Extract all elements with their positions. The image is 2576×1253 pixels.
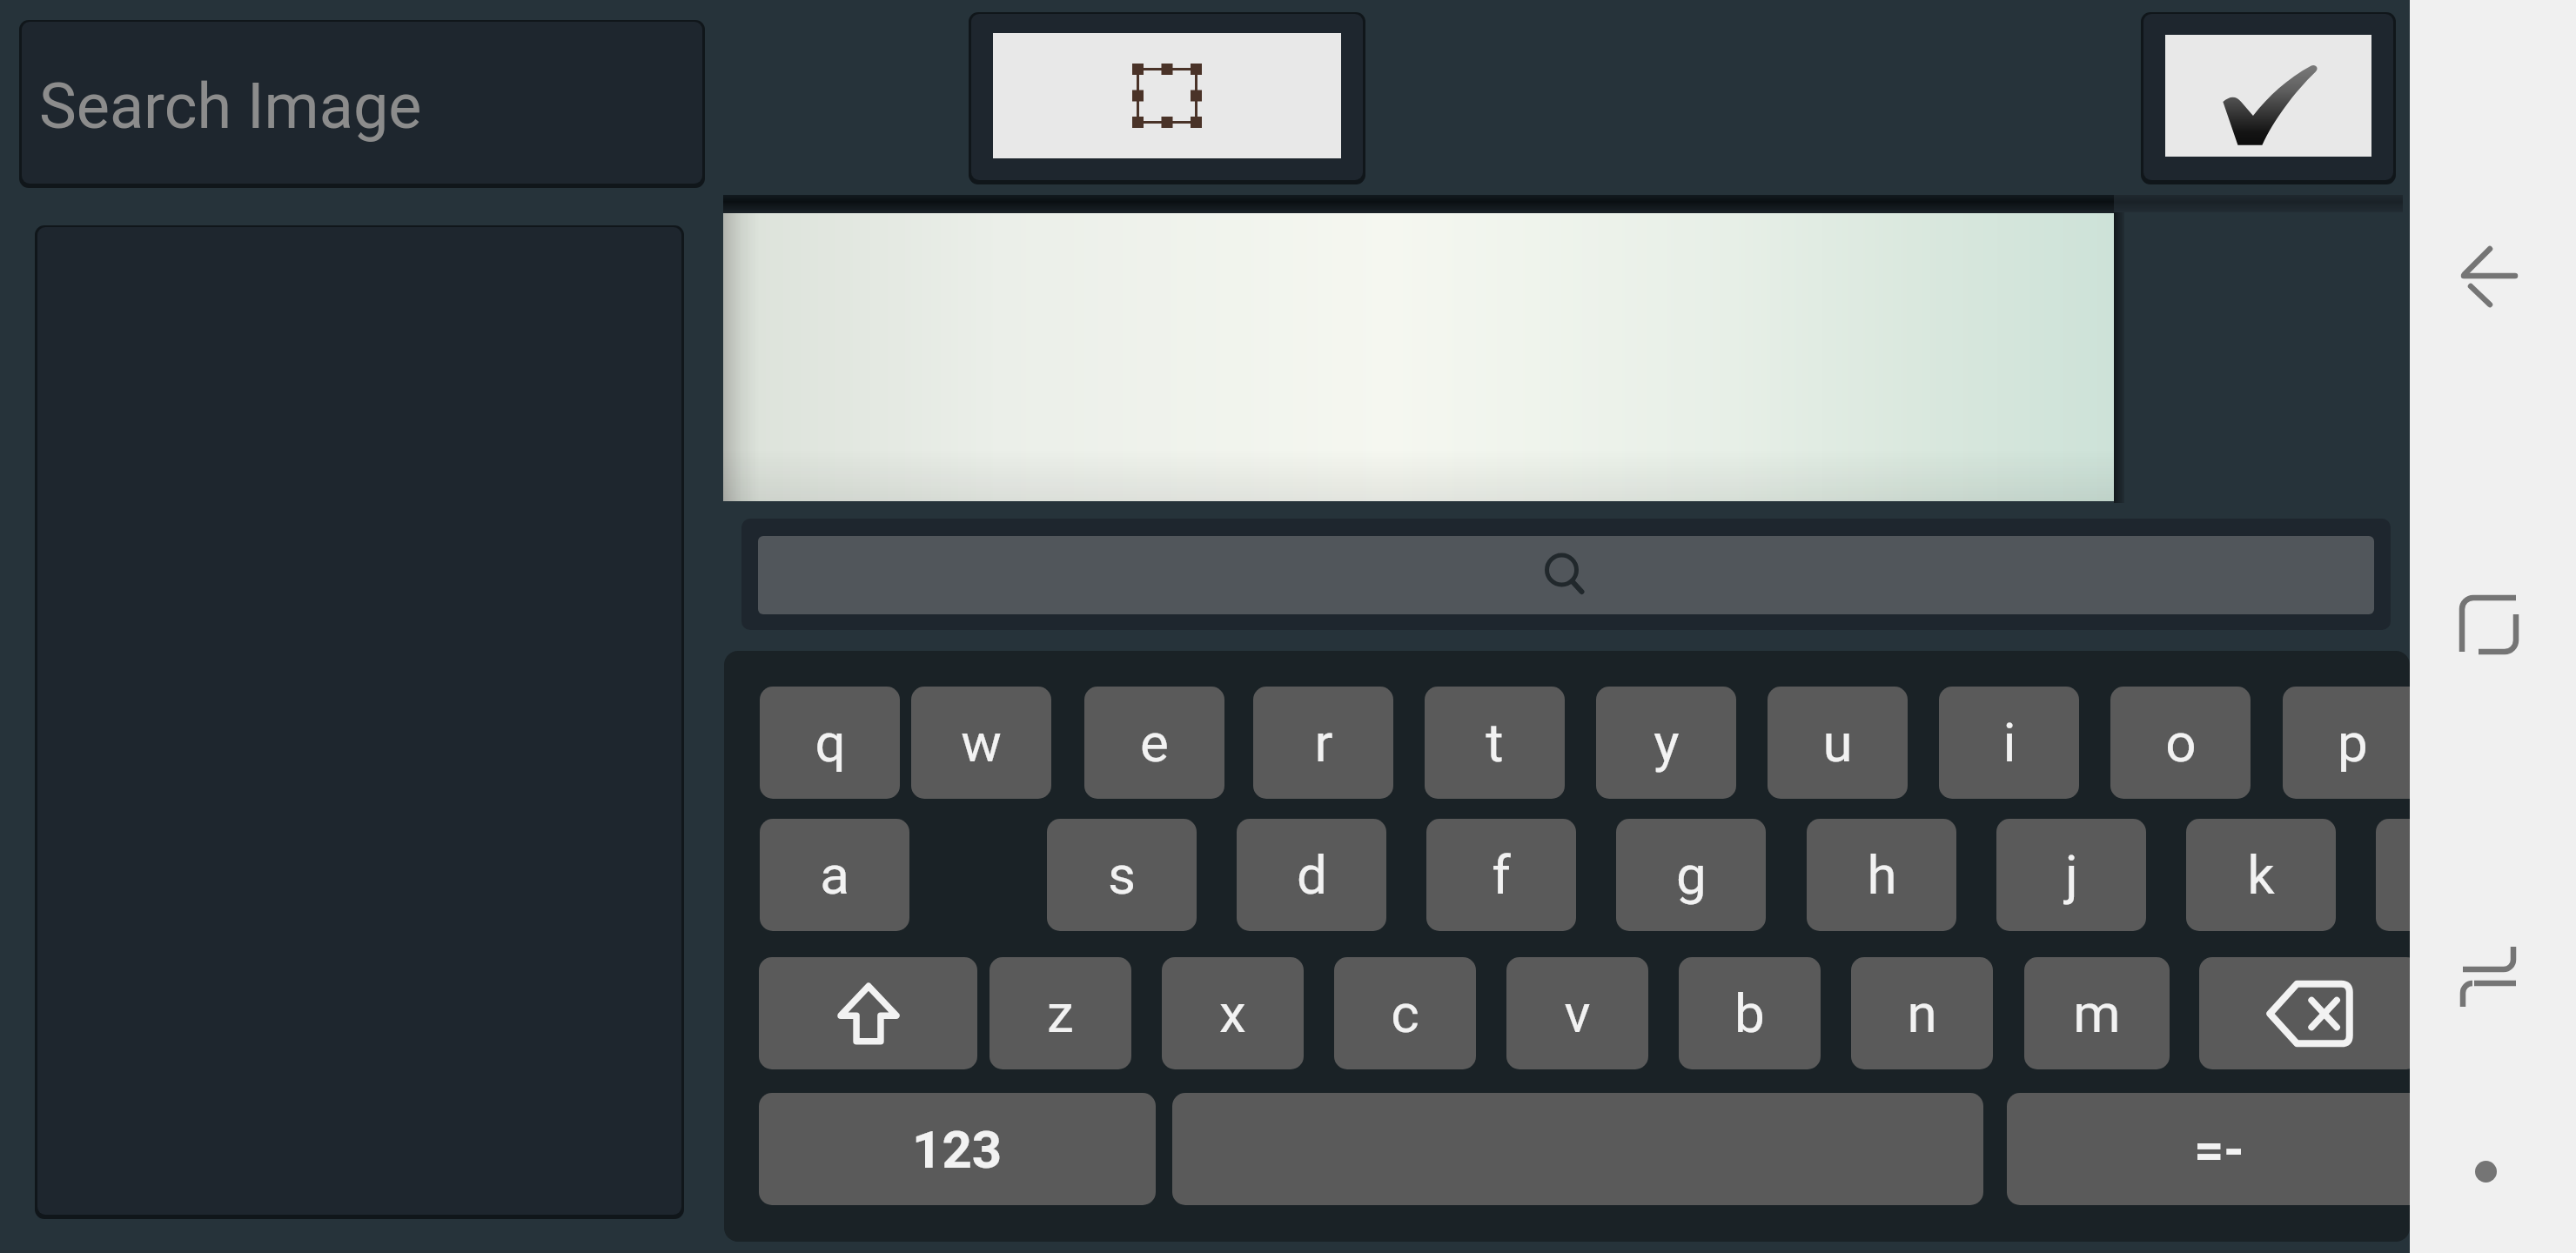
button[interactable]: Recents — [2437, 573, 2541, 677]
button[interactable]: Search — [758, 536, 2374, 614]
staticText: =- — [2194, 1119, 2244, 1180]
button[interactable]: f — [1426, 819, 1576, 931]
button[interactable]: 123 — [759, 1093, 1156, 1205]
button[interactable]: x — [1162, 957, 1304, 1069]
staticText: k — [2247, 843, 2275, 907]
button[interactable]: g — [1616, 819, 1766, 931]
button[interactable]: r — [1253, 687, 1393, 799]
staticText: r — [1314, 711, 1333, 774]
button[interactable]: n — [1851, 957, 1993, 1069]
staticText: b — [1734, 982, 1765, 1045]
button[interactable]: a — [760, 819, 909, 931]
staticText: j — [2065, 843, 2078, 907]
staticText: p — [2338, 711, 2368, 774]
button[interactable] — [759, 957, 977, 1069]
button[interactable]: t — [1425, 687, 1565, 799]
staticText: x — [1219, 982, 1246, 1045]
staticText: g — [1676, 843, 1707, 907]
button[interactable]: j — [1996, 819, 2146, 931]
button[interactable]: v — [1506, 957, 1648, 1069]
staticText: d — [1297, 843, 1327, 907]
staticText: Search Image — [39, 70, 422, 143]
staticText: i — [2002, 711, 2016, 774]
button[interactable]: p — [2283, 687, 2423, 799]
staticText: c — [1391, 982, 1419, 1045]
button[interactable]: u — [1768, 687, 1908, 799]
staticText: s — [1108, 843, 1136, 907]
button[interactable]: Crop — [971, 14, 1363, 180]
button[interactable]: l — [2376, 819, 2526, 931]
staticText: z — [1047, 982, 1074, 1045]
staticText: f — [1492, 843, 1511, 907]
button[interactable]: e — [1084, 687, 1224, 799]
staticText: v — [1564, 982, 1591, 1045]
button[interactable]: q — [760, 687, 900, 799]
button[interactable]: Done — [2143, 14, 2393, 180]
button[interactable]: Back — [2437, 224, 2541, 328]
staticText: 123 — [912, 1119, 1003, 1180]
staticText: w — [961, 711, 1002, 774]
staticText: h — [1867, 843, 1897, 907]
button[interactable]: s — [1047, 819, 1197, 931]
button[interactable]: Home — [2433, 1119, 2538, 1223]
button[interactable]: w — [911, 687, 1051, 799]
staticText: e — [1140, 711, 1169, 774]
button[interactable]: y — [1596, 687, 1736, 799]
button[interactable]: i — [1939, 687, 2079, 799]
button[interactable]: z — [989, 957, 1131, 1069]
staticText: m — [2073, 982, 2121, 1045]
staticText: q — [815, 711, 846, 774]
button[interactable]: Split screen — [2437, 924, 2541, 1029]
staticText: u — [1822, 711, 1853, 774]
button[interactable]: Search Image — [22, 22, 702, 184]
button[interactable]: m — [2024, 957, 2170, 1069]
button[interactable]: d — [1237, 819, 1386, 931]
button[interactable]: h — [1807, 819, 1956, 931]
button[interactable]: k — [2186, 819, 2336, 931]
staticText: o — [2165, 711, 2197, 774]
staticText: n — [1907, 982, 1937, 1045]
button[interactable] — [2199, 957, 2419, 1069]
staticText: a — [820, 843, 849, 907]
button[interactable]: o — [2110, 687, 2251, 799]
button[interactable]: c — [1334, 957, 1476, 1069]
button[interactable] — [1172, 1093, 1983, 1205]
staticText: t — [1486, 711, 1504, 774]
staticText: y — [1654, 711, 1680, 774]
button[interactable]: =- — [2007, 1093, 2432, 1205]
button[interactable]: b — [1679, 957, 1821, 1069]
